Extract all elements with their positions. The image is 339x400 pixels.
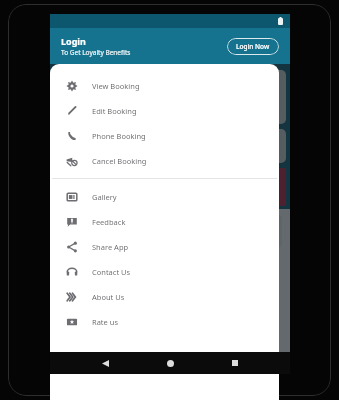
button[interactable]: About Us <box>50 284 279 309</box>
staticText: To Get Loyalty Benefits <box>61 48 131 57</box>
button[interactable]: View Booking <box>50 73 279 98</box>
button[interactable]: Recent apps <box>225 353 245 373</box>
button[interactable]: Back <box>95 353 115 373</box>
button[interactable]: Rate us <box>50 309 279 334</box>
staticText: Login <box>61 35 86 47</box>
button[interactable]: Home <box>160 353 180 373</box>
button[interactable]: Phone Booking <box>50 123 279 148</box>
staticText: Contact Us <box>92 267 131 277</box>
staticText: Share App <box>92 242 129 252</box>
button[interactable]: Login Now <box>227 38 279 55</box>
button[interactable]: Cancel Booking <box>50 148 279 173</box>
staticText: Gallery <box>92 192 117 202</box>
button[interactable]: Feedback <box>50 209 279 234</box>
staticText: View Booking <box>92 81 140 91</box>
button[interactable]: Edit Booking <box>50 98 279 123</box>
staticText: About Us <box>92 292 125 302</box>
staticText: Login Now <box>236 42 270 51</box>
button[interactable]: Gallery <box>50 184 279 209</box>
button[interactable]: Share App <box>50 234 279 259</box>
staticText: Phone Booking <box>92 131 146 141</box>
staticText: Cancel Booking <box>92 156 147 166</box>
staticText: Feedback <box>92 217 126 227</box>
staticText: Edit Booking <box>92 106 137 116</box>
button[interactable]: Contact Us <box>50 259 279 284</box>
staticText: Rate us <box>92 317 118 327</box>
